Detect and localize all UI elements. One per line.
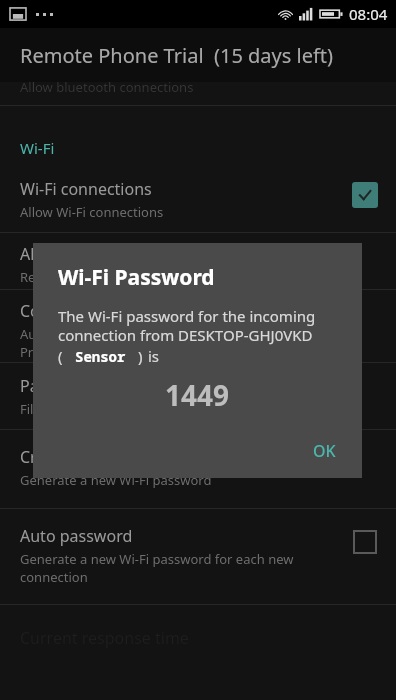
staticText: File access code	[20, 400, 117, 418]
staticText: Allow file transfer	[20, 243, 152, 265]
staticText: )	[138, 346, 143, 366]
staticText: Auto password	[20, 525, 133, 547]
staticText: OK	[313, 440, 336, 462]
button[interactable]: Auto password disabled	[352, 529, 378, 555]
staticText: Password	[20, 375, 93, 397]
staticText: Wi-Fi	[20, 138, 55, 158]
button[interactable]: Create new password	[0, 430, 396, 508]
button[interactable]: Password	[0, 363, 396, 429]
staticText: Remote Phone Trial (15 days left)	[20, 42, 334, 69]
staticText: is	[148, 346, 160, 366]
staticText: Connection	[20, 300, 106, 322]
button[interactable]: Remote Phone Trial (15 days left)	[0, 28, 396, 82]
button[interactable]: OK	[297, 430, 352, 472]
staticText: Generate a new Wi-Fi password	[20, 471, 212, 489]
button[interactable]: Auto password	[0, 509, 396, 604]
staticText: 1449	[165, 376, 230, 414]
staticText: The Wi-Fi password for the incoming conn…	[58, 306, 316, 345]
staticText: Allow bluetooth connections	[20, 78, 194, 96]
staticText: Allow Wi-Fi connections	[20, 203, 164, 221]
button[interactable]: Wi-Fi connections enabled	[352, 182, 378, 208]
staticText: Automatic Primary	[20, 325, 83, 361]
staticText: 08:04	[349, 4, 388, 24]
staticText: Generate a new Wi-Fi password for each n…	[20, 550, 294, 586]
button[interactable]: Allow bluetooth connections	[0, 82, 396, 105]
staticText: Create new password	[20, 446, 182, 468]
staticText: (	[58, 346, 63, 366]
button[interactable]: Allow file transfer	[0, 233, 396, 289]
staticText: Wi-Fi Password	[58, 263, 215, 292]
button[interactable]: Connection	[0, 290, 396, 362]
staticText: Wi-Fi connections	[20, 178, 152, 200]
button[interactable]: Wi-Fi connections	[0, 170, 396, 232]
staticText: Remote file access	[20, 268, 133, 286]
staticText: Sensor	[75, 347, 126, 366]
